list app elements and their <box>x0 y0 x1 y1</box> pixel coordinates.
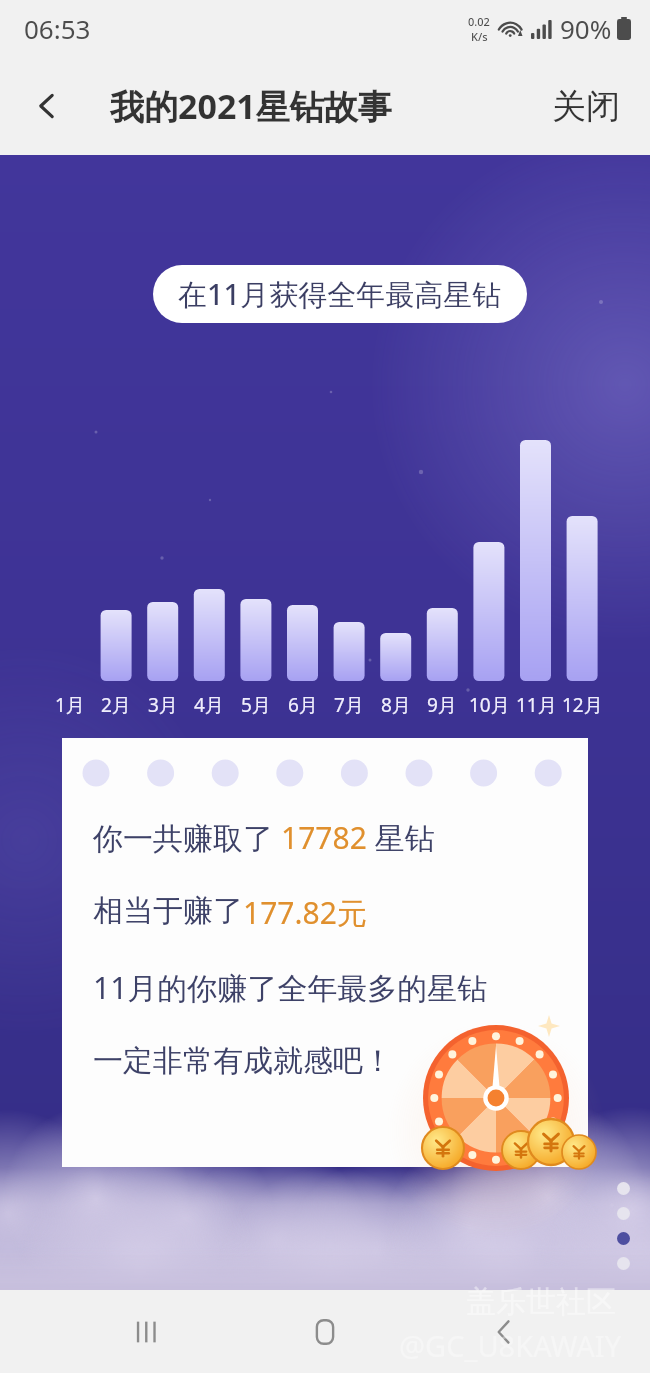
staticText: 3月 <box>148 692 178 718</box>
staticText: 关闭 <box>552 85 620 128</box>
staticText: 盖乐世社区 <box>466 1283 616 1321</box>
staticText: 我的2021星钻故事 <box>110 83 392 129</box>
staticText: 8月 <box>381 692 411 718</box>
button[interactable]: Back <box>20 79 74 133</box>
staticText: @GC_U8KAWAIY <box>399 1326 622 1365</box>
staticText: 4月 <box>194 692 224 718</box>
staticText: 06:53 <box>24 11 91 46</box>
staticText: 7月 <box>334 692 364 718</box>
button[interactable]: Recents <box>115 1300 179 1364</box>
staticText: 0.02 <box>468 14 490 29</box>
button[interactable]: Home <box>293 1300 357 1364</box>
staticText: 12月 <box>562 692 603 718</box>
staticText: 在11月获得全年最高星钻 <box>178 274 502 314</box>
button[interactable]: Back <box>472 1300 536 1364</box>
button[interactable]: 关闭 <box>544 79 628 134</box>
staticText: 11月的你赚了全年最多的星钻 <box>93 967 488 1008</box>
staticText: 9月 <box>427 692 457 718</box>
button[interactable]: Page 1 <box>617 1182 630 1195</box>
staticText: 1月 <box>55 692 85 718</box>
staticText: 17782 <box>281 817 367 858</box>
staticText: 一定非常有成就感吧！ <box>93 1042 393 1080</box>
staticText: 2月 <box>101 692 131 718</box>
staticText: 10月 <box>469 692 510 718</box>
staticText: 11月 <box>516 692 557 718</box>
staticText: 你一共赚取了 <box>93 817 281 858</box>
staticText: 177.82元 <box>243 892 367 933</box>
button[interactable]: 在11月获得全年最高星钻 <box>153 265 527 323</box>
staticText: K/s <box>471 29 488 44</box>
staticText: 相当于赚了 <box>93 892 243 930</box>
staticText: 6月 <box>288 692 318 718</box>
button[interactable]: Page 4 <box>617 1257 630 1270</box>
button[interactable]: Page 2 <box>617 1207 630 1220</box>
staticText: 90% <box>560 11 612 46</box>
staticText: 星钻 <box>367 817 435 858</box>
button[interactable]: Page 3 <box>617 1232 630 1245</box>
staticText: 5月 <box>241 692 271 718</box>
